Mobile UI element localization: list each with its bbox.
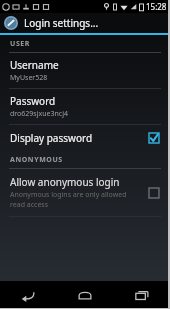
staticText: Username <box>10 58 59 72</box>
button[interactable]: Back <box>0 281 56 309</box>
staticText: Login settings... <box>24 16 99 30</box>
button[interactable]: Checked <box>148 132 160 144</box>
button[interactable]: Username <box>0 53 170 88</box>
staticText: Allow anonymous login <box>10 175 120 189</box>
staticText: USER <box>10 39 31 49</box>
button[interactable]: Display password <box>0 125 170 151</box>
button[interactable]: Allow anonymous login <box>0 169 170 216</box>
staticText: Password <box>10 94 56 108</box>
staticText: dro629sjxue3ncj4 <box>10 109 68 119</box>
button[interactable]: Password <box>0 89 170 124</box>
staticText: Display password <box>10 131 93 145</box>
button[interactable]: Home <box>56 281 113 309</box>
staticText: Anonymous logins are only allowed read a… <box>10 190 142 210</box>
staticText: MyUser528 <box>10 73 48 83</box>
staticText: 15:28 <box>146 1 167 12</box>
button[interactable]: Recent apps <box>113 281 170 309</box>
staticText: ANONYMOUS <box>10 155 63 165</box>
button[interactable]: Unchecked <box>148 187 160 199</box>
